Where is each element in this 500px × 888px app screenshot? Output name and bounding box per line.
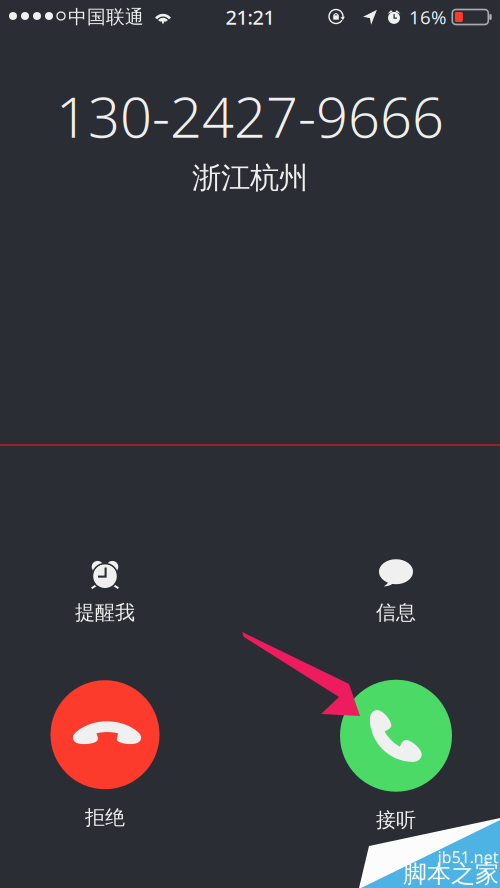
staticText: 信息 (376, 600, 416, 625)
staticText: 提醒我 (75, 600, 135, 625)
staticText: 脚本之家 (403, 859, 499, 888)
staticText: 16% (409, 5, 447, 29)
staticText: 130-2427-9666 (56, 79, 444, 153)
staticText: 拒绝 (85, 805, 125, 830)
staticText: 接听 (376, 808, 416, 832)
staticText: 中国联通 (68, 5, 144, 28)
button[interactable]: 拒绝 (35, 680, 175, 830)
staticText: jb51.net (437, 846, 498, 868)
button[interactable]: 提醒我 (45, 552, 165, 632)
staticText: 21:21 (225, 4, 274, 30)
staticText: 浙江杭州 (192, 160, 308, 196)
button[interactable]: 信息 (336, 552, 456, 632)
button[interactable]: 接听 (326, 681, 466, 831)
